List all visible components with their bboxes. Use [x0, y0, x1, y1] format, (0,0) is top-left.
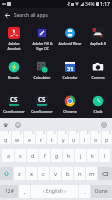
- button[interactable]: d: [27, 149, 38, 162]
- staticText: s: [19, 152, 22, 159]
- staticText: v: [54, 170, 58, 178]
- staticText: p: [105, 136, 109, 143]
- button[interactable]: ,: [19, 185, 30, 198]
- button[interactable]: CS: [28, 90, 56, 124]
- staticText: 2: [20, 131, 22, 135]
- button[interactable]: i: [80, 131, 90, 144]
- button[interactable]: CS: [0, 90, 28, 124]
- staticText: 4: [43, 131, 45, 135]
- staticText: ‹ English ›: [43, 188, 66, 195]
- staticText: r: [40, 136, 43, 143]
- staticText: 9: [98, 131, 100, 135]
- staticText: h: [67, 152, 71, 159]
- button[interactable]: Stickers: [3, 122, 9, 128]
- button[interactable]: o: [91, 131, 101, 144]
- staticText: CS: [38, 95, 46, 103]
- button[interactable]: Settings: [101, 122, 107, 128]
- button[interactable]: Camera: [84, 56, 112, 90]
- staticText: 0: [109, 131, 111, 135]
- button[interactable]: s: [15, 149, 26, 162]
- staticText: Search all apps: [14, 12, 48, 19]
- staticText: Done: [95, 188, 108, 195]
- button[interactable]: t: [47, 131, 57, 144]
- staticText: c: [42, 170, 45, 178]
- button[interactable]: w: [12, 131, 23, 144]
- button[interactable]: 12#: [0, 185, 18, 198]
- staticText: Boost+: [8, 75, 20, 80]
- button[interactable]: Adobe Fill & Sign DC: [28, 22, 56, 56]
- staticText: CS: [10, 95, 18, 103]
- button[interactable]: ‹ English ›: [31, 185, 78, 198]
- staticText: y: [62, 136, 65, 143]
- button[interactable]: Shift: [0, 167, 13, 180]
- button[interactable]: z: [14, 167, 25, 180]
- staticText: Android Wear: [58, 41, 82, 46]
- button[interactable]: Adobe Acrobat: [0, 22, 28, 56]
- staticText: .: [84, 188, 86, 196]
- staticText: Asphalt 8: [90, 41, 106, 46]
- button[interactable]: f: [39, 149, 50, 162]
- button[interactable]: k: [87, 149, 98, 162]
- staticText: Calendar: [62, 75, 78, 80]
- staticText: Adobe Fill & Sign DC: [32, 41, 53, 51]
- button[interactable]: Done: [91, 185, 112, 198]
- button[interactable]: j: [75, 149, 86, 162]
- staticText: u: [72, 136, 76, 143]
- button[interactable]: p: [102, 131, 112, 144]
- button[interactable]: g: [51, 149, 62, 162]
- staticText: g: [55, 152, 59, 159]
- button[interactable]: m: [86, 167, 97, 180]
- staticText: o: [94, 136, 98, 143]
- staticText: j: [80, 152, 82, 159]
- button[interactable]: v: [50, 167, 61, 180]
- button[interactable]: h: [63, 149, 74, 162]
- button[interactable]: Boost+: [0, 56, 28, 90]
- button[interactable]: Back: [0, 8, 112, 22]
- staticText: z: [18, 170, 21, 178]
- staticText: 3: [32, 131, 34, 135]
- staticText: 12#: [5, 188, 14, 195]
- staticText: l: [104, 152, 106, 159]
- button[interactable]: Emoji: [15, 122, 21, 128]
- staticText: Clock: [93, 109, 103, 114]
- staticText: CamScanner: [3, 109, 25, 114]
- staticText: b: [66, 170, 70, 178]
- button[interactable]: Backspace: [98, 167, 112, 180]
- button[interactable]: b: [62, 167, 73, 180]
- button[interactable]: l: [99, 149, 110, 162]
- staticText: m: [89, 170, 95, 178]
- staticText: w: [15, 136, 20, 143]
- staticText: a: [7, 152, 10, 159]
- staticText: d: [31, 152, 35, 159]
- button[interactable]: x: [26, 167, 37, 180]
- button[interactable]: q: [0, 131, 11, 144]
- staticText: 31: [67, 65, 74, 72]
- button[interactable]: y: [58, 131, 68, 144]
- staticText: 1: [8, 131, 10, 135]
- button[interactable]: Clock: [84, 90, 112, 124]
- button[interactable]: a: [2, 149, 14, 162]
- staticText: i: [84, 136, 86, 143]
- button[interactable]: n: [74, 167, 85, 180]
- staticText: t: [51, 136, 53, 143]
- staticText: CamScanner: [31, 109, 53, 114]
- staticText: ,: [24, 188, 26, 196]
- button[interactable]: 31: [56, 56, 84, 90]
- staticText: 6: [65, 131, 67, 135]
- staticText: x: [30, 170, 34, 178]
- staticText: Adobe Acrobat: [7, 41, 21, 51]
- button[interactable]: Chrome: [56, 90, 84, 124]
- button[interactable]: u: [69, 131, 79, 144]
- staticText: 34%: [85, 1, 95, 8]
- staticText: 7: [76, 131, 78, 135]
- button[interactable]: Android Wear: [56, 22, 84, 56]
- staticText: f: [44, 152, 46, 159]
- button[interactable]: Asphalt 8: [84, 22, 112, 56]
- staticText: Chrome: [63, 109, 77, 114]
- button[interactable]: Calculator: [28, 56, 56, 90]
- staticText: q: [4, 136, 8, 143]
- button[interactable]: .: [79, 185, 90, 198]
- button[interactable]: e: [24, 131, 35, 144]
- button[interactable]: c: [38, 167, 49, 180]
- button[interactable]: r: [36, 131, 46, 144]
